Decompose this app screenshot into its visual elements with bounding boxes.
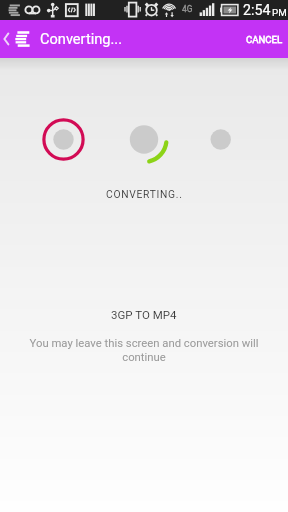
button[interactable]: CANCEL: [240, 20, 288, 58]
staticText: 4G: [182, 4, 193, 14]
staticText: You may leave this screen and conversion…: [20, 337, 268, 364]
staticText: CONVERTING..: [106, 188, 183, 200]
staticText: 3GP TO MP4: [111, 308, 177, 321]
staticText: CANCEL: [246, 34, 283, 45]
staticText: 2:54: [243, 2, 271, 19]
button[interactable]: Open navigation drawer: [0, 20, 36, 58]
staticText: Converting...: [40, 30, 123, 47]
staticText: PM: [272, 7, 287, 18]
